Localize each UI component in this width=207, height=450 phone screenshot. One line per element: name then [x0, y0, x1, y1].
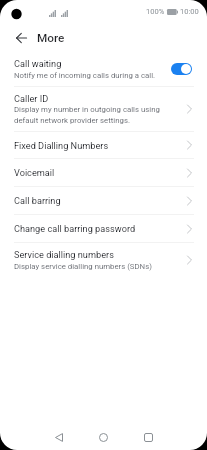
button[interactable]: Service dialling numbers — [0, 243, 207, 277]
staticText: 100% — [146, 7, 165, 16]
staticText: default network provider settings. — [14, 116, 131, 125]
staticText: Display my number in outgoing calls usin… — [14, 105, 160, 114]
button[interactable]: Call barring — [0, 187, 207, 214]
staticText: Fixed Dialling Numbers — [14, 140, 109, 151]
staticText: 10:00 — [180, 7, 199, 16]
button[interactable]: Caller ID — [0, 87, 207, 131]
staticText: Caller ID — [14, 93, 49, 104]
button[interactable]: Navigate up — [9, 26, 33, 50]
button[interactable]: Recent apps — [141, 424, 156, 450]
button[interactable]: Home — [96, 424, 111, 450]
staticText: Service dialling numbers — [14, 249, 114, 260]
staticText: Call waiting — [14, 58, 62, 69]
button[interactable]: Voicemail — [0, 159, 207, 186]
staticText: Change call barring password — [14, 223, 136, 234]
staticText: More — [37, 31, 65, 45]
staticText: Voicemail — [14, 167, 55, 178]
button[interactable]: Fixed Dialling Numbers — [0, 132, 207, 158]
button[interactable]: Call waiting switch — [171, 63, 192, 75]
button[interactable]: Back — [51, 424, 66, 450]
staticText: Call barring — [14, 195, 61, 206]
staticText: Display service dialling numbers (SDNs) — [14, 262, 152, 271]
button[interactable]: Change call barring password — [0, 215, 207, 242]
button[interactable]: Call waiting — [0, 52, 207, 86]
staticText: Notify me of incoming calls during a cal… — [14, 71, 156, 80]
